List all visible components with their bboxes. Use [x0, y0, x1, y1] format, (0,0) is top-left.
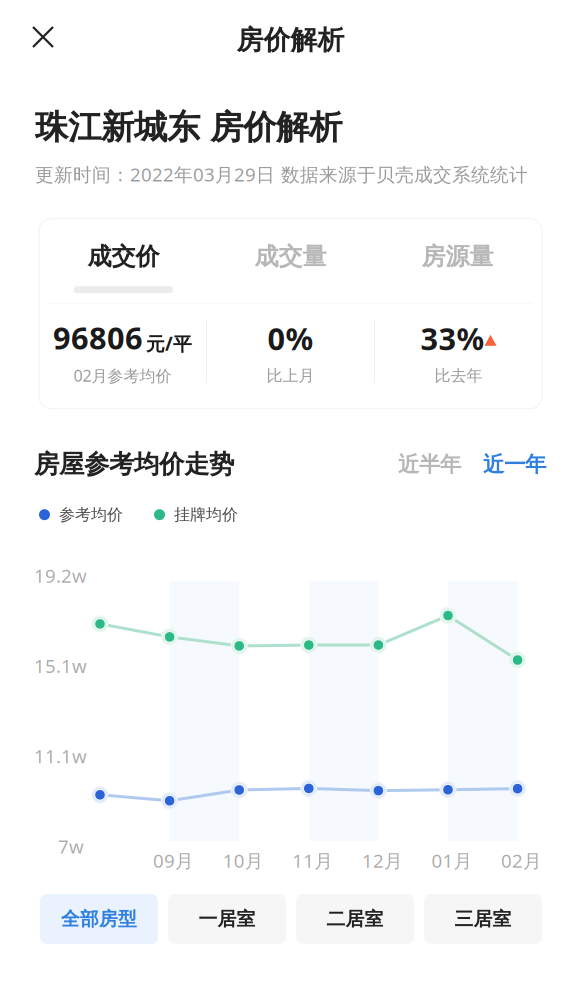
staticText: 二居室: [326, 907, 383, 930]
staticText: 11.1w: [34, 744, 87, 768]
staticText: 11月: [292, 848, 333, 873]
staticText: 33%: [420, 318, 484, 359]
staticText: 近一年: [483, 451, 546, 477]
staticText: 7w: [58, 834, 84, 859]
button[interactable]: Close: [18, 12, 68, 62]
staticText: 0%: [267, 318, 313, 359]
staticText: 02月参考均价: [73, 365, 171, 386]
staticText: 参考均价: [59, 505, 123, 524]
staticText: 全部房型: [61, 907, 137, 930]
staticText: 三居室: [454, 907, 511, 930]
staticText: 珠江新城东 房价解析: [35, 107, 342, 148]
staticText: 比去年: [434, 366, 482, 385]
staticText: 09月: [153, 848, 194, 873]
staticText: 房源量: [421, 242, 493, 271]
button[interactable]: 一居室: [168, 894, 286, 944]
staticText: 02月: [501, 848, 542, 873]
button[interactable]: 成交量: [207, 219, 374, 303]
staticText: 一居室: [198, 907, 255, 930]
button[interactable]: 近一年: [461, 451, 546, 477]
staticText: 更新时间：2022年03月29日 数据来源于贝壳成交系统统计: [35, 162, 528, 187]
staticText: 房价解析: [236, 24, 344, 56]
staticText: 19.2w: [34, 563, 87, 588]
staticText: 挂牌均价: [174, 505, 238, 524]
staticText: 近半年: [398, 451, 461, 477]
staticText: 成交量: [254, 242, 326, 271]
staticText: 96806: [53, 317, 143, 358]
staticText: 01月: [431, 848, 472, 873]
staticText: 元/平: [146, 331, 192, 356]
button[interactable]: 二居室: [296, 894, 414, 944]
button[interactable]: 房源量: [374, 219, 541, 303]
staticText: 12月: [362, 848, 403, 873]
staticText: 15.1w: [34, 653, 87, 678]
staticText: 成交价: [87, 242, 159, 271]
staticText: 房屋参考均价走势: [34, 449, 234, 480]
button[interactable]: 三居室: [424, 894, 542, 944]
button[interactable]: 全部房型: [40, 894, 158, 944]
button[interactable]: 近半年: [398, 451, 461, 477]
staticText: 比上月: [266, 366, 314, 385]
button[interactable]: 成交价: [40, 219, 207, 303]
staticText: 10月: [223, 848, 264, 873]
